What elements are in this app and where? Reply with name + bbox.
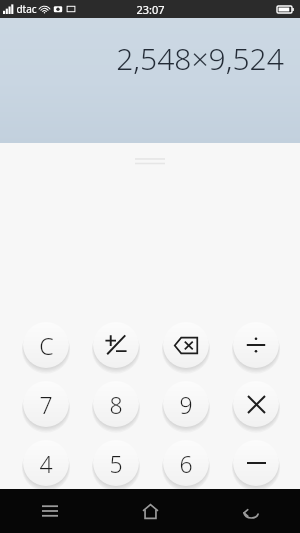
button[interactable]: 4 bbox=[23, 440, 69, 486]
staticText: 5 bbox=[109, 448, 123, 479]
button[interactable]: 6 bbox=[163, 440, 209, 486]
button[interactable]: C bbox=[23, 322, 69, 368]
staticText: C bbox=[39, 330, 54, 361]
button[interactable]: Divide bbox=[233, 322, 279, 368]
staticText: 6 bbox=[179, 448, 193, 479]
button[interactable]: Plus minus bbox=[93, 322, 139, 368]
button[interactable]: Multiply bbox=[233, 381, 279, 427]
staticText: 7 bbox=[39, 389, 53, 420]
button[interactable]: 9 bbox=[163, 381, 209, 427]
button[interactable]: Plus bbox=[233, 499, 279, 533]
staticText: 1 bbox=[39, 507, 53, 533]
staticText: 9 bbox=[179, 389, 193, 420]
staticText: 8 bbox=[109, 389, 123, 420]
button[interactable]: Back bbox=[200, 489, 300, 533]
button[interactable]: Recents bbox=[0, 489, 100, 533]
button[interactable]: 8 bbox=[93, 381, 139, 427]
button[interactable]: 7 bbox=[23, 381, 69, 427]
button[interactable]: 5 bbox=[93, 440, 139, 486]
staticText: dtac bbox=[16, 2, 37, 16]
button[interactable]: Home bbox=[100, 489, 200, 533]
button[interactable]: Backspace bbox=[163, 322, 209, 368]
button[interactable]: 1 bbox=[23, 499, 69, 533]
staticText: 2,548×9,524 bbox=[116, 38, 284, 79]
button[interactable]: Minus bbox=[233, 440, 279, 486]
staticText: 4 bbox=[39, 448, 53, 479]
staticText: 23:07 bbox=[136, 2, 165, 17]
